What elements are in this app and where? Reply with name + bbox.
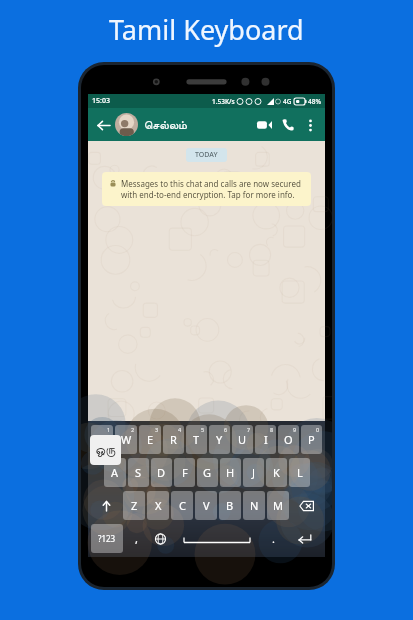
- staticText: செல்லம்: [144, 119, 187, 131]
- button[interactable]: Change language: [149, 524, 171, 553]
- staticText: K: [273, 465, 280, 480]
- staticText: C: [179, 498, 186, 513]
- button[interactable]: Z: [123, 491, 145, 520]
- staticText: ஒரு: [116, 510, 134, 521]
- staticText: H: [226, 465, 235, 480]
- staticText: D: [157, 465, 166, 480]
- staticText: TODAY: [195, 150, 218, 160]
- staticText: F: [182, 465, 188, 480]
- button[interactable]: T: [186, 425, 207, 454]
- button[interactable]: L: [289, 458, 310, 487]
- staticText: Z: [131, 498, 138, 513]
- button[interactable]: R: [163, 425, 184, 454]
- staticText: .: [272, 531, 275, 546]
- button[interactable]: Y: [209, 425, 230, 454]
- button[interactable]: A: [104, 458, 126, 487]
- staticText: P: [308, 432, 315, 447]
- button[interactable]: .: [262, 524, 284, 553]
- staticText: X: [155, 498, 162, 513]
- button[interactable]: Translate: [152, 534, 174, 556]
- button[interactable]: G: [197, 458, 218, 487]
- other: Attach: [268, 509, 280, 521]
- button[interactable]: B: [219, 491, 241, 520]
- button[interactable]: Video call: [252, 113, 276, 137]
- button[interactable]: E: [139, 425, 161, 454]
- staticText: J: [252, 465, 256, 480]
- staticText: 0: [316, 426, 320, 433]
- button[interactable]: M: [267, 491, 289, 520]
- button[interactable]: Space: [173, 524, 260, 553]
- button[interactable]: Enter: [286, 524, 322, 553]
- button[interactable]: D: [151, 458, 172, 487]
- staticText: 1.53K/s: [212, 97, 235, 106]
- button[interactable]: F: [174, 458, 195, 487]
- staticText: 4: [178, 426, 182, 433]
- staticText: L: [297, 465, 303, 480]
- button[interactable]: I: [255, 425, 276, 454]
- staticText: Q: [98, 432, 107, 447]
- staticText: 3: [155, 426, 159, 433]
- staticText: B: [226, 498, 234, 513]
- staticText: 7: [247, 426, 251, 433]
- staticText: O: [284, 432, 293, 447]
- staticText: 4G: [283, 97, 292, 106]
- button[interactable]: H: [220, 458, 241, 487]
- button[interactable]: ஒரு: [93, 502, 287, 528]
- button[interactable]: J: [243, 458, 264, 487]
- staticText: 9: [293, 426, 297, 433]
- button[interactable]: C: [171, 491, 193, 520]
- staticText: 8: [270, 426, 274, 433]
- staticText: ஒரு: [95, 444, 116, 457]
- button[interactable]: ?123: [91, 524, 123, 553]
- staticText: G: [203, 465, 212, 480]
- staticText: ?123: [98, 533, 116, 544]
- staticText: 48%: [308, 97, 321, 106]
- staticText: 15:03: [92, 96, 110, 106]
- button[interactable]: Messages to this chat and calls are now …: [102, 172, 311, 206]
- staticText: Tamil Keyboard: [109, 11, 304, 48]
- button[interactable]: Voice input: [282, 534, 304, 556]
- staticText: 1: [107, 426, 111, 433]
- button[interactable]: More options: [300, 115, 320, 135]
- staticText: R: [170, 432, 177, 447]
- button[interactable]: V: [195, 491, 217, 520]
- button[interactable]: Tamil language key: [90, 435, 121, 465]
- button[interactable]: Emoji: [109, 534, 131, 556]
- staticText: T: [193, 432, 200, 447]
- button[interactable]: Send: [292, 501, 320, 529]
- button[interactable]: W: [115, 425, 137, 454]
- button[interactable]: Profile photo: [115, 113, 138, 136]
- staticText: U: [238, 432, 247, 447]
- staticText: 5: [201, 426, 205, 433]
- staticText: W: [121, 432, 132, 447]
- button[interactable]: P: [301, 425, 322, 454]
- staticText: M: [273, 498, 283, 513]
- staticText: Y: [216, 432, 223, 447]
- button[interactable]: U: [232, 425, 253, 454]
- staticText: V: [203, 498, 210, 513]
- staticText: Messages to this chat and calls are now …: [121, 178, 304, 200]
- button[interactable]: Settings: [239, 534, 261, 556]
- button[interactable]: S: [128, 458, 149, 487]
- staticText: 6: [224, 426, 228, 433]
- button[interactable]: X: [147, 491, 169, 520]
- button[interactable]: Voice call: [276, 113, 300, 137]
- button[interactable]: Themes: [195, 534, 217, 556]
- staticText: E: [147, 432, 154, 447]
- button[interactable]: ,: [125, 524, 147, 553]
- staticText: ,: [135, 531, 138, 546]
- staticText: N: [250, 498, 259, 513]
- button[interactable]: Backspace: [291, 491, 322, 520]
- button[interactable]: O: [278, 425, 299, 454]
- button[interactable]: Q: [91, 425, 113, 454]
- button[interactable]: N: [243, 491, 265, 520]
- button[interactable]: Back: [93, 115, 113, 135]
- staticText: S: [135, 465, 142, 480]
- button[interactable]: K: [266, 458, 287, 487]
- button[interactable]: Shift: [91, 491, 121, 520]
- staticText: I: [264, 432, 268, 447]
- staticText: 2: [131, 426, 135, 433]
- staticText: A: [111, 465, 119, 480]
